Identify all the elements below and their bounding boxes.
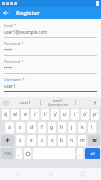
staticText: 8: [76, 110, 78, 113]
staticText: w: [13, 111, 17, 118]
staticText: 7: [66, 110, 68, 113]
button[interactable]: s: [16, 122, 25, 133]
staticText: 0: [96, 110, 98, 113]
button[interactable]: Backspace: [88, 135, 100, 146]
button[interactable]: r: [31, 109, 39, 120]
button[interactable]: o: [81, 109, 89, 120]
button[interactable]: c: [38, 135, 46, 146]
staticText: j: [71, 124, 73, 131]
button[interactable]: i: [71, 109, 79, 120]
staticText: user1: [4, 83, 16, 89]
staticText: 2: [16, 110, 18, 113]
button[interactable]: Suggestions: [3, 100, 9, 106]
staticText: 1: [6, 110, 8, 113]
button[interactable]: q: [2, 109, 9, 120]
button[interactable]: Back: [14, 170, 22, 178]
button[interactable]: l: [88, 122, 96, 133]
staticText: user1@example.com: [4, 29, 48, 35]
staticText: f: [41, 124, 43, 131]
staticText: @example.com: [48, 103, 69, 107]
button[interactable]: y: [51, 109, 59, 120]
staticText: i: [74, 111, 76, 118]
button[interactable]: Back: [0, 7, 12, 19]
button[interactable]: Voice input: [92, 100, 98, 106]
staticText: t: [44, 111, 46, 118]
button[interactable]: e: [21, 109, 29, 120]
staticText: user1: [20, 100, 31, 105]
button[interactable]: b: [58, 135, 66, 146]
staticText: p: [93, 111, 97, 118]
button[interactable]: Password *: [4, 59, 97, 77]
button[interactable]: t: [41, 109, 49, 120]
button[interactable]: Username *: [4, 77, 97, 95]
button[interactable]: .: [77, 148, 83, 159]
button[interactable]: Password *: [4, 41, 97, 59]
staticText: e: [24, 111, 27, 118]
button[interactable]: v: [48, 135, 56, 146]
button[interactable]: a: [5, 122, 14, 133]
staticText: 6: [56, 110, 58, 113]
staticText: k: [81, 124, 84, 131]
button[interactable]: user1: [41, 98, 75, 107]
staticText: l: [91, 124, 93, 131]
button[interactable]: p: [91, 109, 99, 120]
button[interactable]: h: [58, 122, 66, 133]
staticText: •••••: [4, 47, 13, 53]
button[interactable]: ?123: [1, 148, 14, 159]
staticText: y: [54, 111, 57, 118]
staticText: Register: [16, 9, 40, 17]
staticText: c: [41, 137, 44, 144]
staticText: Password *: [4, 41, 24, 46]
staticText: user1: [53, 98, 64, 103]
staticText: 9: [86, 110, 88, 113]
button[interactable]: w: [11, 109, 19, 120]
button[interactable]: Recents: [79, 170, 87, 178]
button[interactable]: Emoji: [24, 148, 31, 159]
staticText: b: [60, 137, 64, 144]
staticText: d: [30, 124, 34, 131]
staticText: ?123: [4, 152, 11, 156]
staticText: .: [79, 151, 81, 157]
staticText: x: [30, 137, 33, 144]
staticText: v: [51, 137, 54, 144]
staticText: 5: [46, 110, 48, 113]
staticText: Email *: [4, 23, 17, 28]
button[interactable]: g: [48, 122, 56, 133]
button[interactable]: f: [38, 122, 46, 133]
staticText: 3: [26, 110, 28, 113]
button[interactable]: Email *: [4, 23, 97, 41]
button[interactable]: u: [61, 109, 69, 120]
staticText: n: [70, 137, 74, 144]
staticText: q: [4, 111, 8, 118]
staticText: r: [34, 111, 37, 118]
staticText: u: [63, 111, 67, 118]
staticText: s: [19, 124, 22, 131]
button[interactable]: ,: [16, 148, 22, 159]
button[interactable]: Shift: [1, 135, 14, 146]
staticText: o: [83, 111, 87, 118]
button[interactable]: k: [78, 122, 86, 133]
staticText: h: [60, 124, 64, 131]
staticText: m: [80, 137, 85, 144]
staticText: z: [19, 137, 22, 144]
staticText: ,: [18, 151, 20, 157]
staticText: g: [50, 124, 54, 131]
staticText: a: [8, 124, 11, 131]
staticText: •••••: [4, 65, 13, 71]
staticText: 4: [36, 110, 38, 113]
button[interactable]: j: [68, 122, 76, 133]
button[interactable]: user1: [11, 100, 40, 105]
button[interactable]: Home: [47, 170, 55, 178]
button[interactable]: x: [27, 135, 36, 146]
button[interactable]: m: [78, 135, 86, 146]
button[interactable]: Enter: [85, 148, 100, 159]
staticText: Username *: [4, 77, 25, 82]
staticText: Password *: [4, 59, 24, 64]
button[interactable]: z: [16, 135, 25, 146]
button[interactable]: d: [27, 122, 36, 133]
button[interactable]: n: [68, 135, 76, 146]
